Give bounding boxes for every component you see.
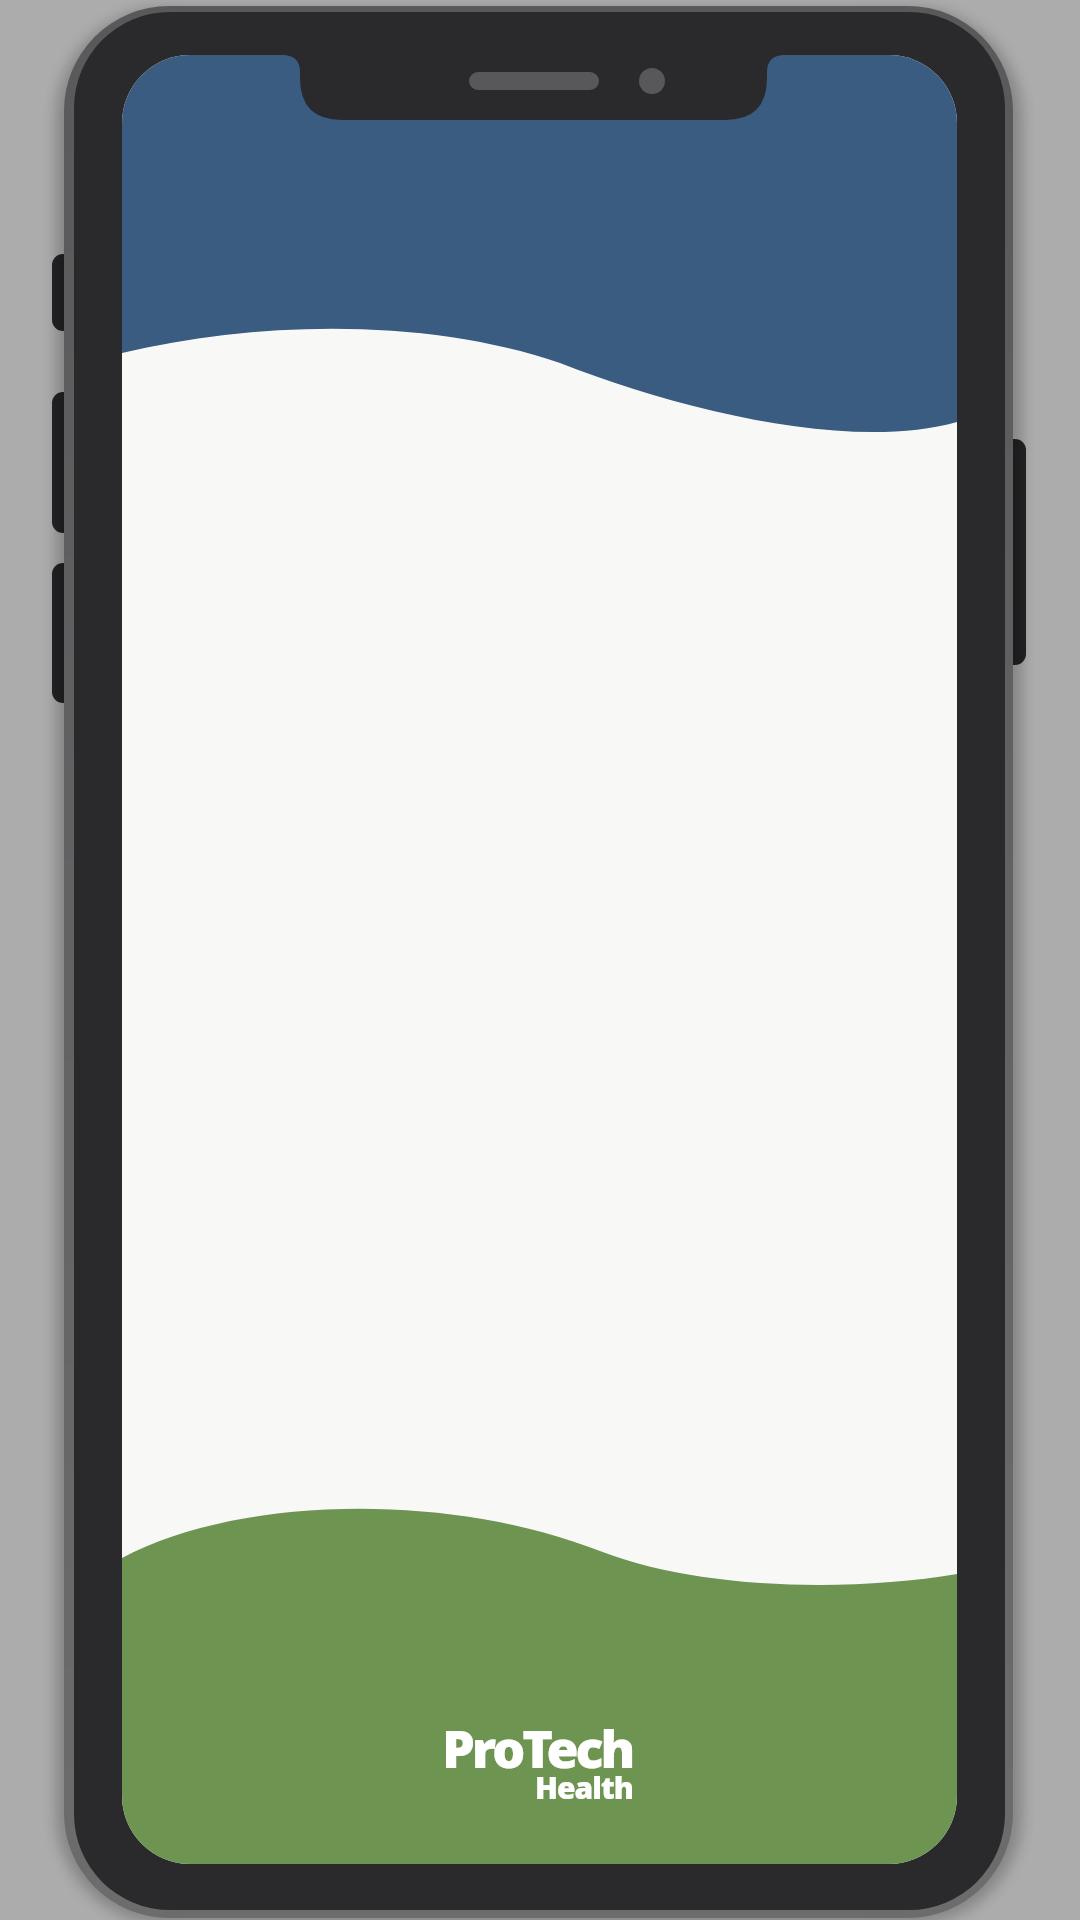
staticText: Health [535,1767,633,1808]
staticText: ProTech [442,1712,633,1783]
